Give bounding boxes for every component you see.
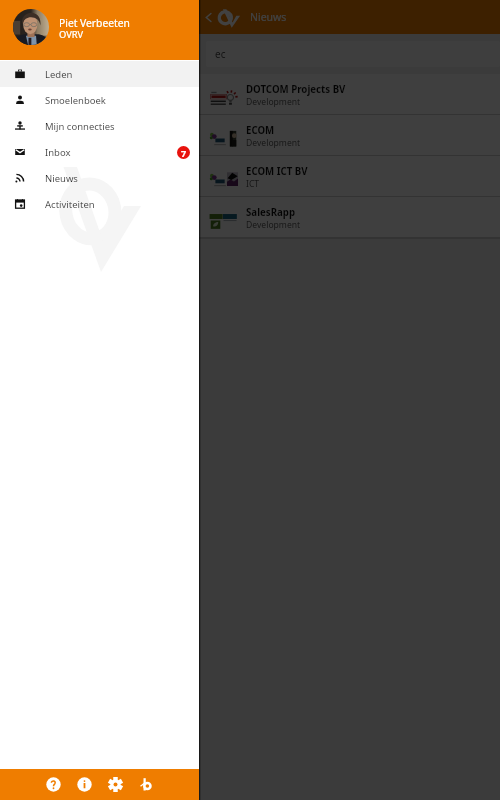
staticText: Leden bbox=[45, 68, 73, 81]
button[interactable]: Piet Verbeeten bbox=[0, 0, 199, 60]
button[interactable]: Back bbox=[200, 9, 216, 25]
button[interactable]: Activiteiten bbox=[0, 191, 199, 217]
staticText: ec bbox=[215, 47, 226, 61]
button[interactable]: About bbox=[131, 769, 162, 800]
button[interactable]: Settings bbox=[100, 769, 131, 800]
button[interactable]: SalesRapp bbox=[0, 197, 500, 237]
staticText: OVRV bbox=[59, 28, 84, 41]
staticText: Development bbox=[246, 137, 301, 149]
staticText: Smoelenboek bbox=[45, 94, 106, 107]
button[interactable]: DOTCOM Projects BV bbox=[0, 74, 500, 114]
staticText: Mijn connecties bbox=[45, 120, 115, 133]
staticText: 7 bbox=[181, 147, 187, 159]
button[interactable]: ECOM ICT BV bbox=[0, 156, 500, 196]
staticText: Development bbox=[246, 219, 301, 231]
staticText: ECOM bbox=[246, 124, 275, 137]
staticText: ECOM ICT BV bbox=[246, 165, 308, 178]
button[interactable]: ECOM bbox=[0, 115, 500, 155]
staticText: DOTCOM Projects BV bbox=[246, 83, 346, 96]
staticText: Development bbox=[246, 96, 301, 108]
staticText: Nieuws bbox=[45, 172, 78, 185]
staticText: Activiteiten bbox=[45, 198, 95, 211]
staticText: Inbox bbox=[45, 146, 71, 159]
staticText: ICT bbox=[246, 178, 260, 190]
button[interactable]: Nieuws bbox=[0, 165, 199, 191]
button[interactable]: Leden bbox=[0, 61, 199, 87]
button[interactable]: Information bbox=[69, 769, 100, 800]
staticText: SalesRapp bbox=[246, 206, 296, 219]
staticText: Piet Verbeeten bbox=[59, 16, 130, 30]
button[interactable]: Help bbox=[38, 769, 69, 800]
button[interactable]: Mijn connecties bbox=[0, 113, 199, 139]
button[interactable]: Smoelenboek bbox=[0, 87, 199, 113]
staticText: Nieuws bbox=[250, 10, 287, 24]
button[interactable]: Inbox bbox=[0, 139, 199, 165]
